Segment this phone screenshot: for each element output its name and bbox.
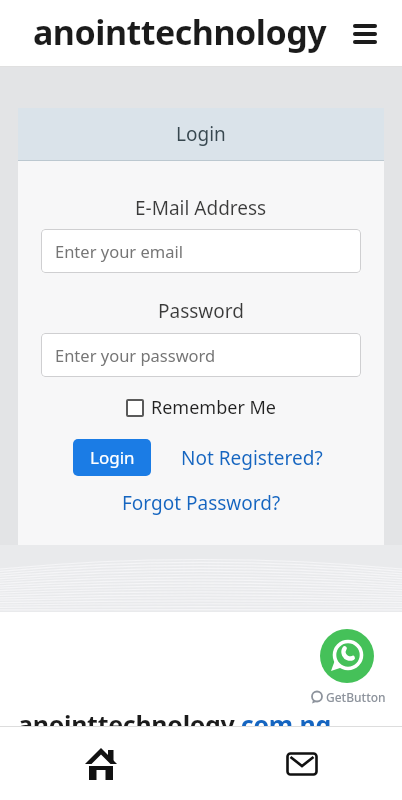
staticText: Login — [90, 446, 135, 469]
staticText: Forgot Password? — [122, 490, 281, 516]
button[interactable] — [201, 727, 402, 800]
staticText: Enter your password — [55, 344, 216, 366]
staticText: anointtechnology — [33, 9, 327, 55]
button[interactable] — [0, 727, 201, 800]
button[interactable] — [320, 629, 374, 683]
button[interactable]: Enter your email — [41, 229, 361, 273]
button[interactable]: Remember Me — [126, 395, 276, 420]
button[interactable]: Forgot Password? — [122, 490, 281, 516]
staticText: Remember Me — [151, 395, 276, 420]
button[interactable]: Login — [73, 439, 151, 476]
staticText: Login — [176, 121, 226, 147]
staticText: Not Registered? — [181, 445, 323, 471]
staticText: anointtechnology com.ng — [18, 707, 331, 741]
staticText: Enter your email — [55, 240, 183, 262]
button[interactable]: Enter your password — [41, 333, 361, 377]
button[interactable] — [353, 24, 377, 44]
button[interactable]: GetButton — [310, 689, 386, 705]
staticText: GetButton — [326, 689, 386, 705]
button[interactable]: Not Registered? — [181, 445, 323, 471]
staticText: Password — [158, 298, 244, 324]
staticText: E-Mail Address — [135, 195, 267, 221]
